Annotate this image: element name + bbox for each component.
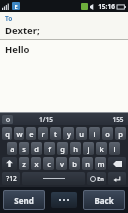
button[interactable]: l: [109, 142, 120, 155]
staticText: l: [113, 144, 116, 154]
button[interactable]: [2, 157, 17, 170]
button[interactable]: To: [0, 12, 128, 39]
button[interactable]: Back: [83, 190, 125, 210]
button[interactable]: ?12: [2, 172, 20, 185]
staticText: y: [67, 129, 71, 139]
staticText: E: [14, 3, 18, 10]
staticText: s: [22, 144, 26, 154]
staticText: h: [73, 144, 78, 154]
button[interactable]: w: [14, 127, 24, 140]
staticText: 1/15: [39, 115, 53, 124]
staticText: t: [54, 129, 57, 139]
staticText: 155: [112, 115, 124, 124]
staticText: ?12: [6, 174, 17, 183]
staticText: Dexter;: [5, 24, 40, 37]
button[interactable]: [108, 157, 126, 170]
staticText: q: [5, 129, 10, 139]
button[interactable]: b: [69, 157, 80, 170]
button[interactable]: y: [63, 127, 74, 140]
staticText: a: [10, 144, 15, 154]
button[interactable]: s: [19, 142, 29, 155]
button[interactable]: x: [31, 157, 41, 170]
staticText: j: [87, 144, 90, 154]
button[interactable]: k: [96, 142, 107, 155]
staticText: c: [47, 159, 51, 169]
button[interactable]: d: [31, 142, 42, 155]
staticText: g: [60, 144, 65, 154]
staticText: Back: [94, 195, 114, 206]
button[interactable]: o: [102, 127, 113, 140]
button[interactable]: Hello: [0, 40, 128, 112]
button[interactable]: Attach: [2, 115, 13, 124]
staticText: u: [79, 129, 84, 139]
staticText: v: [60, 159, 64, 169]
button[interactable]: En: [87, 172, 106, 185]
button[interactable]: Send: [3, 190, 45, 210]
staticText: En: [97, 175, 104, 182]
staticText: z: [22, 159, 26, 169]
button[interactable]: h: [70, 142, 81, 155]
button[interactable]: z: [19, 157, 29, 170]
button[interactable]: n: [82, 157, 93, 170]
button[interactable]: e: [26, 127, 36, 140]
button[interactable]: c: [43, 157, 54, 170]
staticText: r: [41, 129, 45, 139]
button[interactable]: t: [50, 127, 61, 140]
button[interactable]: i: [89, 127, 100, 140]
staticText: Send: [14, 195, 34, 206]
button[interactable]: f: [44, 142, 55, 155]
button[interactable]: g: [57, 142, 68, 155]
button[interactable]: [22, 172, 85, 185]
button[interactable]: v: [56, 157, 67, 170]
button[interactable]: p: [115, 127, 126, 140]
button[interactable]: More options: [51, 192, 77, 208]
staticText: p: [118, 129, 123, 139]
staticText: e: [29, 129, 34, 139]
staticText: f: [48, 144, 51, 154]
staticText: Hello: [5, 43, 30, 56]
button[interactable]: q: [2, 127, 12, 140]
staticText: k: [99, 144, 104, 154]
staticText: d: [34, 144, 39, 154]
staticText: To: [5, 14, 13, 23]
staticText: m: [97, 159, 105, 169]
button[interactable]: [108, 172, 126, 185]
staticText: n: [85, 159, 90, 169]
staticText: w: [16, 129, 23, 139]
staticText: o: [105, 129, 110, 139]
staticText: 15:16: [98, 2, 115, 11]
button[interactable]: j: [83, 142, 94, 155]
button[interactable]: u: [76, 127, 87, 140]
staticText: x: [34, 159, 39, 169]
button[interactable]: m: [95, 157, 106, 170]
staticText: i: [93, 129, 96, 139]
staticText: b: [72, 159, 77, 169]
button[interactable]: r: [38, 127, 48, 140]
button[interactable]: a: [7, 142, 17, 155]
